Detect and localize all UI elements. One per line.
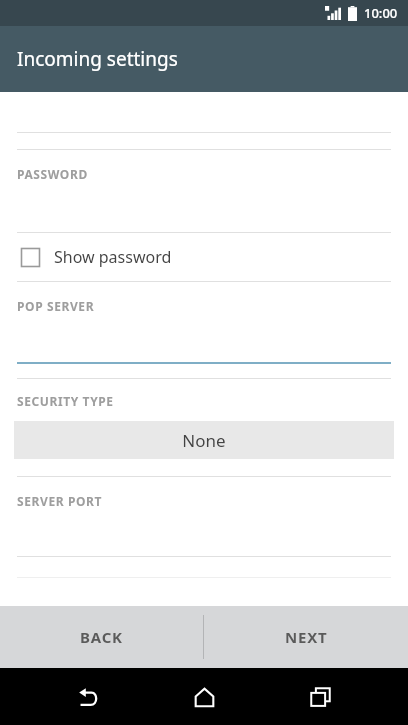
- staticText: None: [182, 429, 226, 452]
- staticText: 10:00: [364, 4, 398, 22]
- button[interactable]: BACK: [0, 606, 203, 668]
- staticText: PASSWORD: [17, 166, 88, 182]
- button[interactable]: Back: [60, 669, 116, 725]
- button[interactable]: Show password: [0, 233, 408, 281]
- button[interactable]: Recent apps: [292, 669, 348, 725]
- button[interactable]: None: [14, 421, 394, 459]
- staticText: NEXT: [285, 627, 328, 647]
- staticText: SECURITY TYPE: [17, 393, 114, 409]
- staticText: Show password: [54, 246, 172, 268]
- other: Signal strength, roaming: [325, 6, 341, 20]
- staticText: SERVER PORT: [17, 493, 103, 509]
- staticText: Incoming settings: [17, 46, 178, 72]
- other: Battery: [348, 6, 357, 21]
- button[interactable]: NEXT: [204, 606, 408, 668]
- button[interactable]: Home: [176, 669, 232, 725]
- staticText: POP SERVER: [17, 298, 95, 314]
- staticText: BACK: [80, 627, 123, 647]
